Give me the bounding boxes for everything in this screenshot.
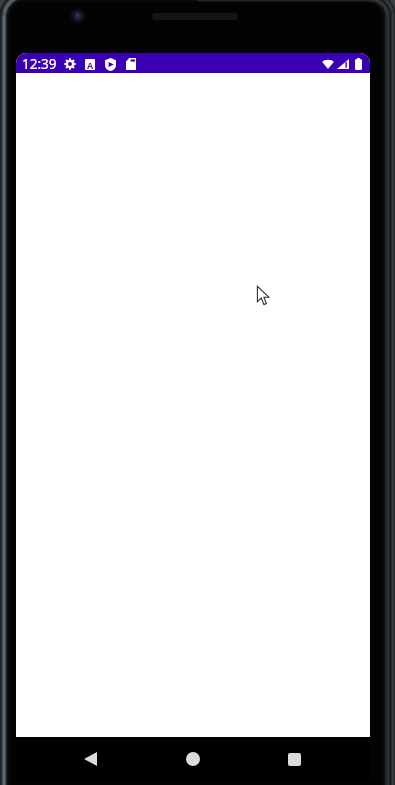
staticText: 12:39 (22, 55, 57, 73)
staticText: A (87, 59, 94, 70)
button[interactable]: Recent apps (278, 743, 310, 775)
button[interactable]: Home (177, 743, 209, 775)
button[interactable]: Back (74, 743, 106, 775)
